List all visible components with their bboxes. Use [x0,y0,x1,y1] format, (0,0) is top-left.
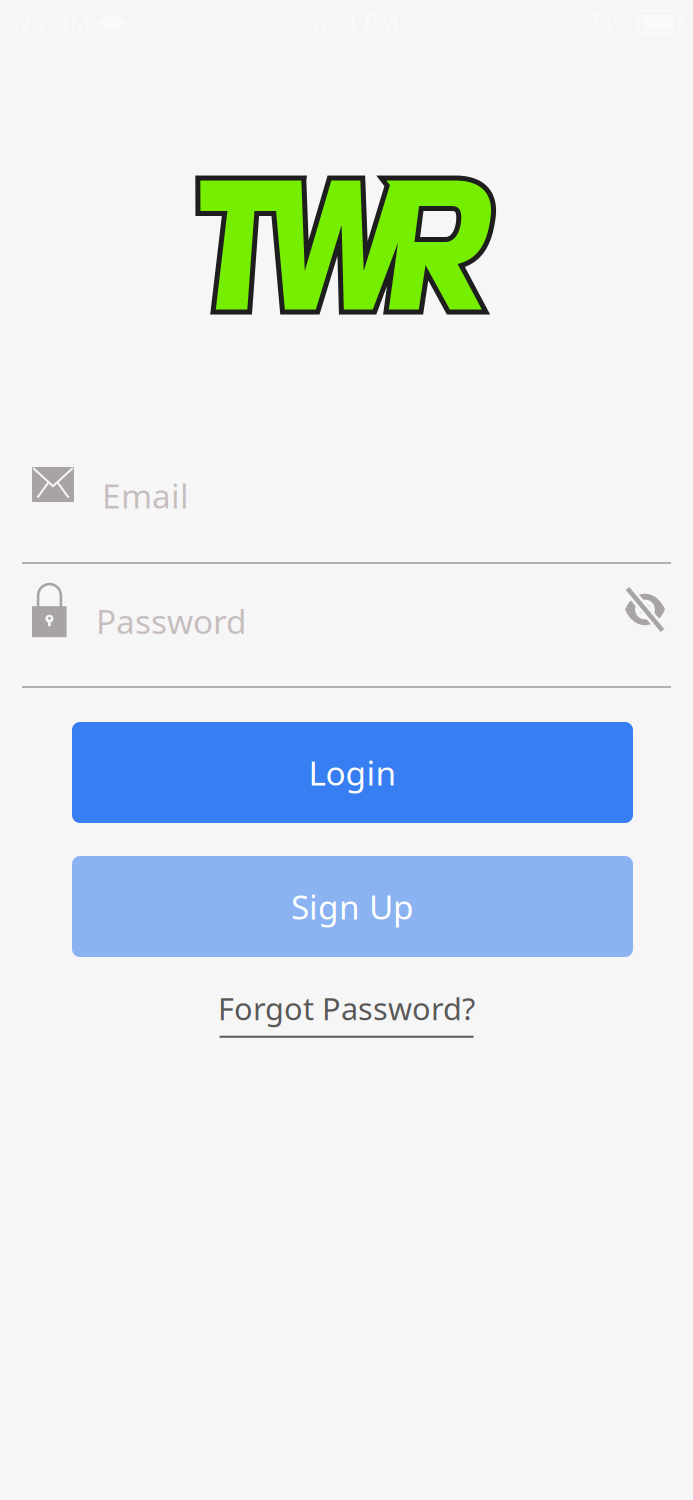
staticText: Email [102,473,189,518]
staticText: Forgot Password? [218,988,475,1029]
button[interactable]: Show password [618,582,671,638]
button[interactable]: Login [72,722,633,823]
staticText: Password [96,599,247,643]
staticText: Sign Up [291,884,414,929]
staticText: Login [308,750,396,795]
button[interactable]: Forgot Password? [218,988,475,1038]
button[interactable]: Sign Up [72,856,633,957]
